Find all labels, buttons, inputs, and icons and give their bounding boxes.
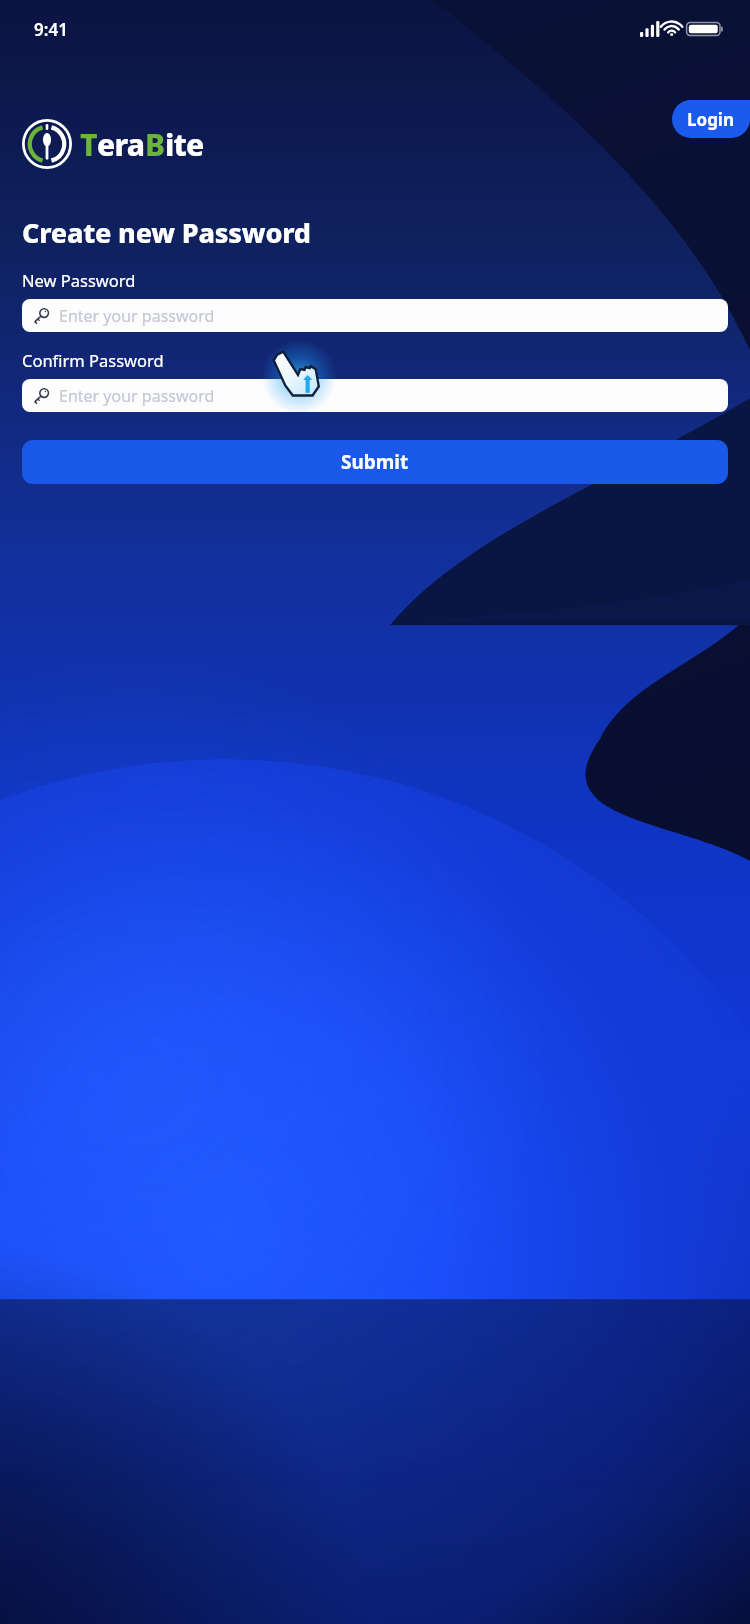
staticText: Create new Password <box>22 214 311 251</box>
staticText: Enter your password <box>59 385 215 407</box>
staticText: Enter your password <box>59 305 215 327</box>
button[interactable]: Login <box>672 100 750 138</box>
staticText: Confirm Password <box>22 349 164 371</box>
staticText: New Password <box>22 269 136 291</box>
staticText: T <box>80 124 97 165</box>
staticText: era <box>97 124 145 165</box>
staticText: Login <box>687 108 735 131</box>
button[interactable]: Submit <box>22 440 728 484</box>
staticText: 9:41 <box>34 18 68 41</box>
button[interactable]: Enter your password <box>22 379 728 412</box>
staticText: ite <box>165 124 204 165</box>
staticText: B <box>145 124 165 165</box>
staticText: Submit <box>341 449 409 475</box>
button[interactable]: Enter your password <box>22 299 728 332</box>
